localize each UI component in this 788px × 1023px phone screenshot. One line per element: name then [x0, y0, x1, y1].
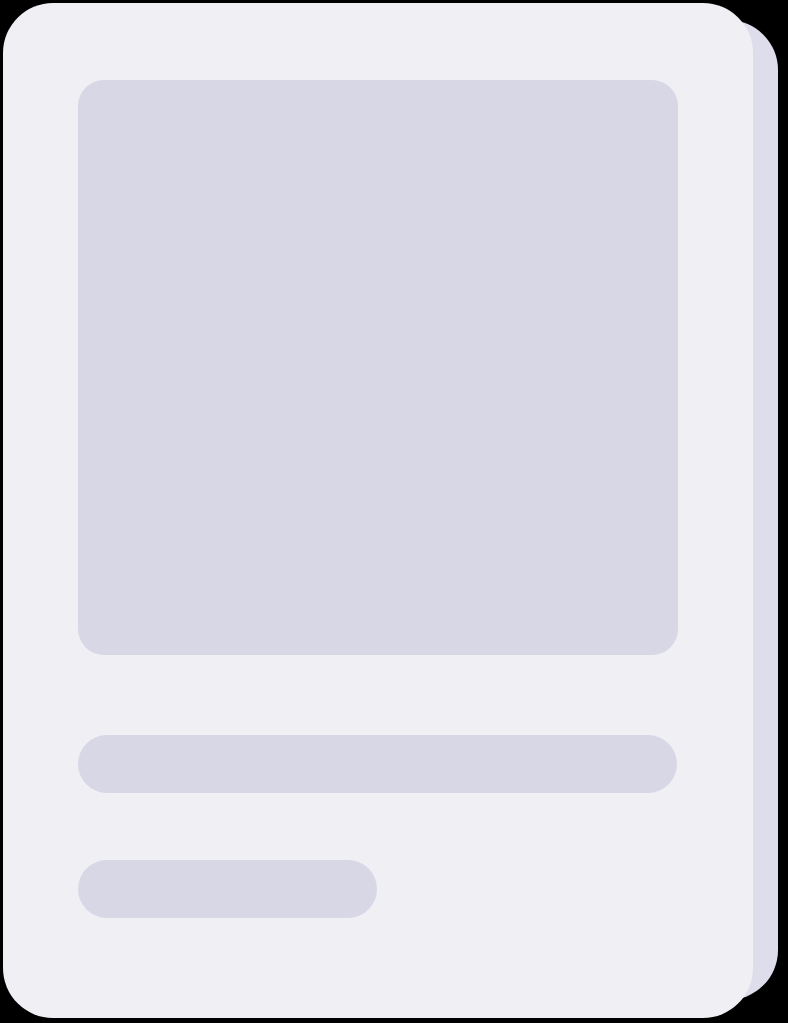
- button[interactable]: Loading content card: [3, 3, 753, 1018]
- button[interactable]: Next card in stack: [28, 20, 778, 1000]
